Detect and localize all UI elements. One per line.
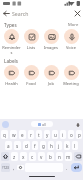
staticText: Lists — [21, 45, 41, 50]
button[interactable]: c — [29, 152, 36, 161]
button[interactable]: z — [11, 152, 18, 161]
button[interactable]: Assistant — [2, 121, 9, 128]
button[interactable]: Food — [21, 64, 41, 87]
staticText: Health — [2, 81, 21, 86]
staticText: x — [22, 154, 25, 160]
button[interactable]: o — [68, 130, 74, 139]
staticText: Meeting — [61, 81, 81, 86]
staticText: Types — [4, 22, 17, 28]
staticText: v — [40, 154, 43, 160]
button[interactable]: p — [76, 130, 82, 139]
staticText: Voice — [61, 45, 81, 50]
staticText: Search — [12, 10, 71, 17]
staticText: d — [25, 143, 28, 149]
button[interactable]: i — [60, 130, 66, 139]
button[interactable]: t — [36, 130, 42, 139]
button[interactable]: u — [52, 130, 58, 139]
staticText: u — [54, 132, 57, 138]
button[interactable]: ?123 — [1, 163, 10, 172]
button[interactable]: Voice input — [74, 121, 81, 128]
button[interactable]: b — [47, 152, 54, 161]
button[interactable]: r — [28, 130, 34, 139]
button[interactable]: f — [32, 141, 38, 150]
staticText: Reminders — [2, 45, 21, 55]
button[interactable]: d — [23, 141, 30, 150]
staticText: Images — [41, 45, 61, 50]
staticText: c — [31, 154, 34, 160]
staticText: k — [66, 143, 69, 149]
button[interactable]: l — [72, 141, 78, 150]
staticText: all — [42, 122, 46, 127]
button[interactable]: Backspace — [74, 152, 82, 161]
button[interactable]: s — [14, 141, 21, 150]
staticText: a — [7, 143, 10, 149]
button[interactable]: Job — [41, 64, 61, 87]
button[interactable]: all — [31, 121, 53, 127]
staticText: e — [21, 132, 24, 138]
staticText: f — [34, 143, 36, 149]
button[interactable]: j — [56, 141, 62, 150]
button[interactable]: Voice — [61, 28, 81, 51]
staticText: Food — [21, 81, 41, 86]
staticText: n — [58, 154, 61, 160]
staticText: z — [13, 154, 16, 160]
button[interactable]: e — [19, 130, 26, 139]
button[interactable]: w — [10, 130, 17, 139]
staticText: r — [30, 132, 32, 138]
staticText: m — [66, 154, 71, 160]
button[interactable]: a — [5, 141, 12, 150]
button[interactable]: More — [68, 22, 79, 28]
staticText: o — [70, 132, 73, 138]
staticText: h — [50, 143, 53, 149]
staticText: g — [42, 143, 45, 149]
button[interactable]: y — [44, 130, 50, 139]
button[interactable]: g — [40, 141, 46, 150]
staticText: l — [74, 143, 76, 149]
button[interactable]: m — [65, 152, 72, 161]
staticText: ?123 — [2, 166, 9, 170]
button[interactable]: Period — [64, 162, 70, 173]
button[interactable]: Images — [41, 28, 61, 51]
button[interactable]: k — [64, 141, 70, 150]
button[interactable]: v — [38, 152, 45, 161]
button[interactable]: q — [1, 130, 8, 139]
staticText: p — [78, 132, 81, 138]
staticText: s — [16, 143, 19, 149]
button[interactable]: Enter — [71, 163, 82, 172]
staticText: . — [66, 165, 68, 171]
button[interactable]: n — [56, 152, 63, 161]
button[interactable]: Emoji — [17, 165, 24, 170]
staticText: t — [38, 132, 40, 138]
button[interactable]: Clear search — [71, 7, 83, 19]
staticText: j — [58, 143, 60, 149]
button[interactable]: Back — [0, 7, 12, 19]
button[interactable]: Health — [2, 64, 21, 87]
staticText: More — [68, 22, 79, 28]
button[interactable]: x — [20, 152, 27, 161]
button[interactable]: Meeting — [61, 64, 81, 87]
staticText: q — [3, 132, 6, 138]
button[interactable]: Lists — [21, 28, 41, 51]
staticText: i — [62, 132, 64, 138]
staticText: w — [12, 132, 16, 138]
staticText: Labels — [4, 58, 19, 64]
staticText: , — [13, 165, 15, 171]
button[interactable]: Reminders — [2, 28, 21, 56]
staticText: y — [46, 132, 49, 138]
button[interactable]: h — [48, 141, 54, 150]
staticText: Job — [41, 81, 61, 86]
staticText: b — [49, 154, 52, 160]
button[interactable]: Comma — [11, 162, 17, 173]
button[interactable]: Shift — [1, 152, 9, 161]
